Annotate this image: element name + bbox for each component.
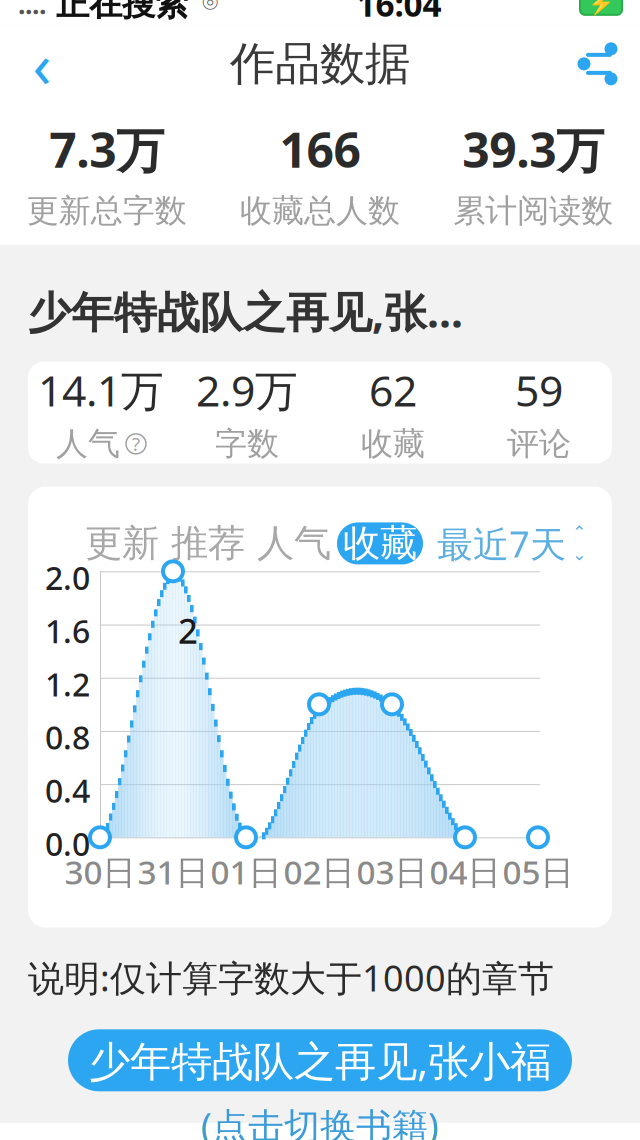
staticText: 更新总字数	[27, 191, 187, 230]
button[interactable]: 更新	[79, 522, 165, 564]
staticText: 31日	[137, 849, 208, 894]
staticText: 评论	[507, 424, 571, 463]
staticText: 作品数据	[230, 36, 410, 92]
button[interactable]: 推荐	[165, 522, 251, 564]
button[interactable]: 收藏	[337, 522, 423, 564]
button[interactable]: 返回	[12, 25, 72, 103]
staticText: 2	[178, 607, 198, 653]
staticText: 人气	[257, 520, 331, 566]
staticText: (点击切换书籍)	[201, 1101, 439, 1140]
staticText: 7.3万	[49, 117, 164, 181]
staticText: 收藏总人数	[240, 191, 400, 230]
staticText: 01日	[210, 849, 281, 894]
staticText: 16:04	[356, 0, 441, 26]
staticText: ⌃	[572, 523, 587, 542]
staticText: 39.3万	[462, 117, 604, 181]
staticText: 少年特战队之再见,张...	[28, 283, 463, 340]
button[interactable]: 人气	[251, 522, 337, 564]
staticText: 1.6	[45, 609, 90, 652]
staticText: 最近7天	[437, 519, 566, 567]
staticText: 0.8	[45, 716, 90, 758]
staticText: ⌾	[188, 0, 218, 17]
staticText: ⌄	[572, 544, 587, 564]
staticText: ?	[132, 431, 140, 456]
button[interactable]: 少年特战队之再见,张小福	[68, 1029, 572, 1091]
button[interactable]: 最近7天	[423, 519, 587, 567]
staticText: 0.0	[45, 822, 90, 865]
staticText: 1.2	[45, 663, 90, 705]
staticText: 累计阅读数	[453, 191, 613, 230]
staticText: 62	[369, 361, 417, 418]
staticText: 59	[515, 361, 563, 418]
staticText: 05日	[502, 849, 573, 894]
button[interactable]: 分享	[568, 25, 628, 103]
staticText: 说明:仅计算字数大于1000的章节	[28, 953, 554, 1001]
staticText: 2.0	[45, 556, 90, 599]
button[interactable]: (点击切换书籍)	[0, 1101, 640, 1140]
staticText: 04日	[429, 849, 500, 894]
staticText: ‹	[32, 23, 51, 104]
staticText: 02日	[283, 849, 354, 894]
staticText: 03日	[356, 849, 427, 894]
staticText: 推荐	[171, 520, 245, 566]
staticText: 2.9万	[196, 361, 298, 418]
staticText: 字数	[215, 424, 279, 463]
staticText: ....	[18, 0, 46, 22]
staticText: ⚡	[587, 0, 614, 16]
staticText: 收藏	[361, 424, 425, 463]
staticText: 0.4	[45, 769, 90, 812]
staticText: 人气	[56, 424, 120, 463]
staticText: 少年特战队之再见,张小福	[89, 1033, 551, 1088]
staticText: 更新	[85, 520, 159, 566]
staticText: 收藏	[343, 520, 417, 566]
staticText: 30日	[64, 849, 135, 894]
staticText: 正在搜索	[46, 0, 188, 24]
staticText: 166	[279, 117, 360, 181]
staticText: 14.1万	[38, 361, 164, 418]
